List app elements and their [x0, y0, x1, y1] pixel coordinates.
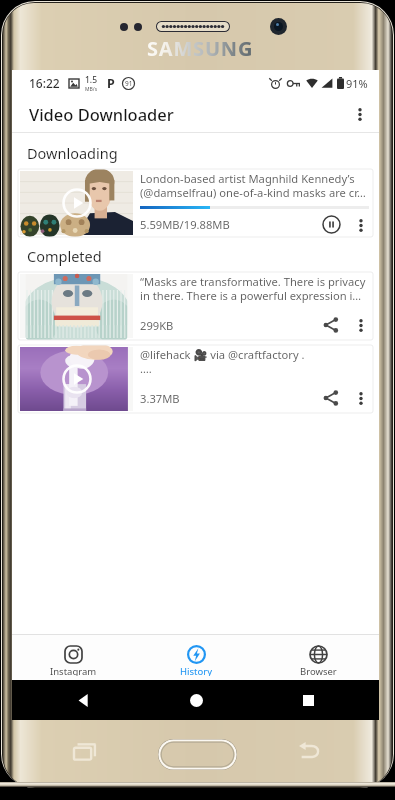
- staticText: MB/s: [85, 86, 98, 93]
- button[interactable]: Browser: [257, 635, 379, 680]
- staticText: History: [180, 665, 212, 676]
- button[interactable]: History: [135, 635, 257, 680]
- staticText: 91%: [346, 76, 368, 91]
- staticText: 1.5: [85, 74, 98, 86]
- button[interactable]: Share: [320, 387, 342, 409]
- staticText: “Masks are transformative. There is priv…: [140, 274, 371, 303]
- button[interactable]: London-based artist Magnhild Kennedy’s (…: [18, 169, 373, 237]
- staticText: Browser: [300, 665, 337, 676]
- button[interactable]: @lifehack 🎥 via @craftfactory . ….: [18, 345, 373, 413]
- staticText: @lifehack 🎥 via @craftfactory . ….: [140, 347, 305, 376]
- button[interactable]: More options: [351, 388, 371, 408]
- button[interactable]: Back: [72, 689, 94, 711]
- button[interactable]: Recents: [72, 738, 98, 764]
- button[interactable]: More options: [351, 315, 371, 335]
- staticText: 91: [125, 79, 133, 88]
- staticText: 299KB: [140, 318, 174, 333]
- staticText: 5.59MB/19.88MB: [140, 217, 230, 232]
- button[interactable]: More options: [351, 215, 371, 235]
- staticText: Downloading: [27, 143, 118, 163]
- staticText: London-based artist Magnhild Kennedy’s (…: [140, 171, 371, 200]
- button[interactable]: Recents: [297, 689, 319, 711]
- button[interactable]: “Masks are transformative. There is priv…: [18, 272, 373, 340]
- button[interactable]: Home: [158, 739, 237, 770]
- button[interactable]: More options: [345, 99, 375, 129]
- staticText: 3.37MB: [140, 391, 180, 406]
- button[interactable]: Back: [297, 738, 323, 764]
- staticText: P: [107, 75, 115, 92]
- staticText: Video Downloader: [29, 103, 174, 125]
- button[interactable]: Share: [320, 314, 342, 336]
- button[interactable]: Pause: [320, 214, 342, 235]
- staticText: SAMSUNG: [147, 35, 254, 62]
- button[interactable]: Home: [185, 689, 207, 711]
- button[interactable]: Instagram: [12, 635, 135, 680]
- staticText: 16:22: [29, 75, 60, 91]
- staticText: Instagram: [50, 665, 97, 676]
- staticText: Completed: [27, 246, 102, 266]
